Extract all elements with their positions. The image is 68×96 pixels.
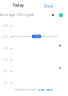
staticText: 80 (3, 70, 7, 73)
staticText: Data from Health (15, 88, 37, 92)
staticText: Learn more (38, 88, 53, 92)
button[interactable]: Learn more (38, 88, 53, 92)
staticText: 40 (3, 81, 7, 85)
button[interactable]: Add entry (59, 13, 63, 17)
staticText: Average 126 mg/dL (0, 12, 34, 17)
staticText: Done (44, 3, 53, 9)
button[interactable]: Today (12, 2, 23, 8)
staticText: 126 (33, 35, 39, 38)
staticText: 200 (2, 35, 8, 39)
staticText: 120 (2, 58, 8, 62)
staticText: 160 (2, 47, 8, 50)
button[interactable]: Done (44, 3, 53, 9)
staticText: Today (12, 2, 23, 8)
staticText: 240 (2, 24, 8, 28)
